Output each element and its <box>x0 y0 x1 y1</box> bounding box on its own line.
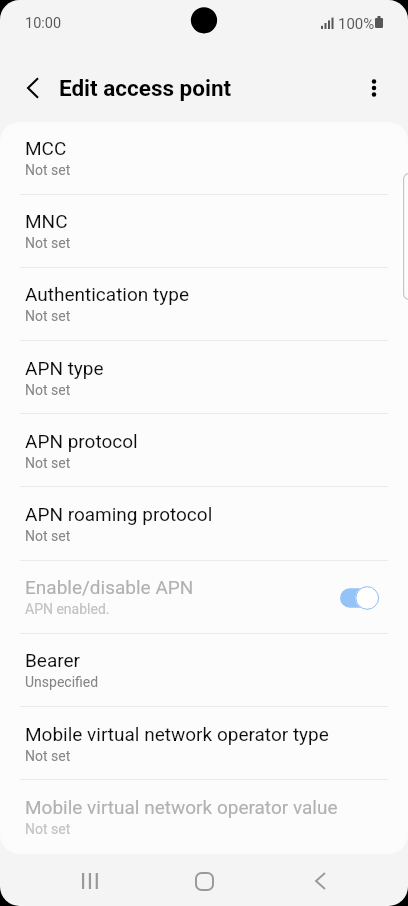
button[interactable]: APN roaming protocol <box>0 488 408 561</box>
staticText: APN protocol <box>25 430 138 452</box>
staticText: MNC <box>25 210 68 232</box>
staticText: Not set <box>25 528 71 544</box>
staticText: Bearer <box>25 649 81 671</box>
staticText: Enable/disable APN <box>25 576 194 598</box>
button[interactable]: Mobile virtual network operator value <box>0 781 408 854</box>
button[interactable]: Recent apps <box>56 863 124 899</box>
button[interactable]: Enable/disable APN <box>0 561 408 634</box>
button[interactable]: APN type <box>0 342 408 415</box>
staticText: Not set <box>25 748 71 764</box>
staticText: Not set <box>25 235 71 251</box>
button[interactable]: Home <box>170 863 238 899</box>
staticText: Not set <box>25 382 71 398</box>
staticText: APN type <box>25 357 104 379</box>
button[interactable]: MNC <box>0 195 408 268</box>
staticText: 100% <box>338 15 375 33</box>
button[interactable]: Back <box>286 863 354 899</box>
staticText: Unspecified <box>25 674 99 690</box>
button[interactable]: MCC <box>0 122 408 195</box>
staticText: Mobile virtual network operator value <box>25 796 338 818</box>
staticText: Not set <box>25 455 71 471</box>
staticText: APN roaming protocol <box>25 503 213 525</box>
button[interactable]: More options <box>353 67 395 109</box>
button[interactable]: Bearer <box>0 634 408 707</box>
button[interactable]: Enable or disable APN <box>340 585 379 611</box>
staticText: Edit access point <box>59 75 232 101</box>
staticText: Not set <box>25 162 71 178</box>
staticText: Mobile virtual network operator type <box>25 723 329 745</box>
staticText: Not set <box>25 821 71 837</box>
button[interactable]: Authentication type <box>0 268 408 341</box>
staticText: APN enabled. <box>25 601 110 617</box>
button[interactable]: Mobile virtual network operator type <box>0 708 408 781</box>
button[interactable]: APN protocol <box>0 415 408 488</box>
button[interactable]: Navigate up <box>12 67 54 109</box>
staticText: 10:00 <box>25 15 62 32</box>
staticText: MCC <box>25 137 67 159</box>
staticText: Authentication type <box>25 283 189 305</box>
staticText: Not set <box>25 308 71 324</box>
